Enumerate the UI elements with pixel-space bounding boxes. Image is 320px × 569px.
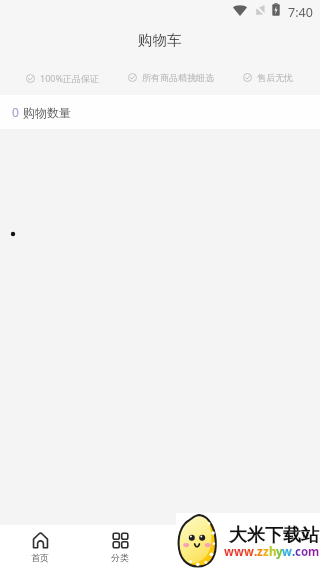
staticText: w	[224, 544, 234, 560]
staticText: 购物数量	[23, 105, 71, 120]
button[interactable]: 首页	[0, 525, 80, 569]
staticText: 首页	[31, 552, 49, 563]
staticText: 7:40	[288, 4, 313, 21]
staticText: 所有商品精挑细选	[142, 72, 214, 83]
staticText: 大米下载站	[229, 524, 319, 547]
staticText: m	[308, 544, 319, 560]
staticText: 售后无忧	[257, 72, 293, 83]
staticText: .	[292, 544, 295, 560]
staticText: z	[257, 544, 263, 560]
button[interactable]: 购物车	[160, 525, 240, 569]
other: Wi-Fi signal	[233, 4, 247, 16]
staticText: h	[269, 544, 276, 560]
button[interactable]: 100%正品保证	[26, 72, 99, 84]
staticText: 0	[12, 104, 19, 120]
staticText: 分类	[111, 552, 129, 563]
staticText: 100%正品保证	[40, 72, 99, 84]
staticText: w	[282, 544, 292, 560]
staticText: c	[295, 544, 301, 560]
staticText: y	[276, 544, 282, 560]
staticText: w	[234, 544, 244, 560]
staticText: o	[301, 544, 308, 560]
staticText: z	[263, 544, 269, 560]
button[interactable]: 我的	[240, 525, 320, 569]
staticText: .	[254, 544, 257, 560]
button[interactable]: 0	[0, 95, 320, 129]
staticText: 我的	[271, 552, 289, 563]
button[interactable]: 所有商品精挑细选	[128, 72, 214, 83]
staticText: 购物车	[138, 31, 182, 49]
button[interactable]: 分类	[80, 525, 160, 569]
staticText: 购物车	[187, 552, 214, 563]
button[interactable]: 售后无忧	[243, 72, 293, 83]
staticText: w	[244, 544, 254, 560]
